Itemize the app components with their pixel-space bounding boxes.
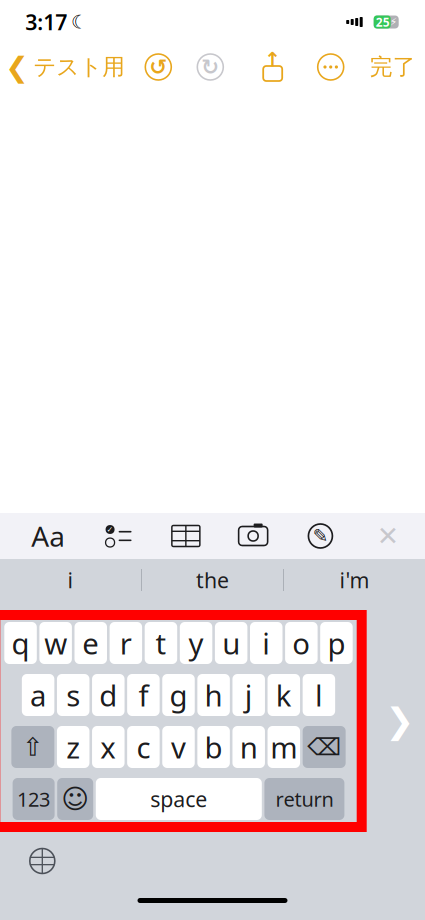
staticText: space: [150, 785, 207, 813]
staticText: s: [66, 675, 80, 714]
staticText: Aa: [31, 517, 65, 555]
staticText: ⇧: [22, 733, 43, 761]
staticText: ☾: [71, 11, 88, 33]
staticText: k: [276, 675, 292, 714]
staticText: 123: [17, 786, 50, 812]
button[interactable]: r: [110, 622, 142, 664]
button[interactable]: y: [180, 622, 212, 664]
button[interactable]: q: [4, 622, 37, 664]
button[interactable]: Checklist: [103, 522, 135, 550]
staticText: 3:17: [25, 8, 67, 36]
button[interactable]: Redo: [195, 52, 225, 82]
staticText: x: [100, 727, 116, 766]
staticText: e: [82, 623, 99, 662]
staticText: y: [189, 623, 204, 662]
button[interactable]: space: [96, 778, 262, 820]
staticText: a: [30, 675, 46, 714]
button[interactable]: b: [197, 726, 230, 768]
staticText: o: [292, 623, 310, 662]
staticText: b: [205, 727, 223, 766]
button[interactable]: Text formatting: [29, 519, 67, 553]
button[interactable]: k: [267, 674, 300, 716]
staticText: u: [222, 623, 240, 662]
staticText: v: [171, 727, 186, 766]
button[interactable]: i'm: [284, 559, 425, 601]
button[interactable]: o: [285, 622, 318, 664]
button[interactable]: i: [250, 622, 282, 664]
button[interactable]: d: [92, 674, 124, 716]
button[interactable]: Emoji: [57, 778, 93, 820]
staticText: ⌫: [307, 733, 341, 761]
button[interactable]: n: [232, 726, 265, 768]
button[interactable]: Share: [258, 52, 288, 82]
button[interactable]: a: [22, 674, 54, 716]
staticText: ☺: [61, 784, 89, 814]
button[interactable]: Close keyboard: [372, 520, 404, 552]
button[interactable]: e: [74, 622, 107, 664]
button[interactable]: the: [142, 559, 283, 601]
button[interactable]: 完了: [370, 47, 425, 87]
button[interactable]: g: [162, 674, 195, 716]
button[interactable]: p: [320, 622, 353, 664]
staticText: i: [262, 623, 270, 662]
button[interactable]: z: [57, 726, 89, 768]
staticText: q: [12, 623, 30, 662]
staticText: the: [196, 566, 229, 594]
button[interactable]: Delete: [303, 726, 346, 768]
button[interactable]: i: [0, 559, 141, 601]
staticText: ❯: [385, 701, 414, 741]
button[interactable]: Camera: [237, 522, 269, 550]
staticText: ↻: [201, 55, 219, 79]
button[interactable]: s: [57, 674, 89, 716]
button[interactable]: j: [232, 674, 265, 716]
button[interactable]: Markup: [304, 522, 336, 550]
button[interactable]: c: [127, 726, 160, 768]
staticText: w: [44, 623, 67, 662]
button[interactable]: v: [162, 726, 195, 768]
staticText: j: [245, 675, 253, 714]
staticText: ❮: [5, 51, 28, 83]
button[interactable]: Shift: [11, 726, 54, 768]
button[interactable]: t: [145, 622, 177, 664]
button[interactable]: Undo: [143, 52, 173, 82]
staticText: r: [120, 623, 132, 662]
button[interactable]: More: [316, 52, 346, 82]
staticText: i'm: [339, 566, 369, 594]
button[interactable]: 123: [13, 778, 55, 820]
staticText: i: [67, 566, 73, 594]
button[interactable]: Next keyboard: [26, 845, 58, 877]
staticText: m: [270, 727, 297, 766]
staticText: ✕: [377, 521, 399, 551]
button[interactable]: w: [39, 622, 72, 664]
staticText: f: [138, 675, 148, 714]
staticText: ⚡︎: [390, 16, 397, 28]
staticText: return: [275, 786, 333, 812]
staticText: ✎: [312, 525, 328, 547]
staticText: n: [240, 727, 258, 766]
staticText: 完了: [370, 53, 416, 81]
staticText: t: [155, 623, 166, 662]
staticText: ✓: [107, 525, 114, 534]
staticText: z: [66, 727, 80, 766]
button[interactable]: return: [264, 778, 344, 820]
button[interactable]: Table: [170, 522, 202, 550]
staticText: c: [136, 727, 150, 766]
button[interactable]: x: [92, 726, 124, 768]
button[interactable]: f: [127, 674, 160, 716]
staticText: テスト用: [33, 53, 125, 81]
button[interactable]: l: [303, 674, 335, 716]
staticText: ↑: [264, 48, 281, 71]
button[interactable]: m: [267, 726, 300, 768]
staticText: 25: [376, 14, 390, 30]
staticText: d: [99, 675, 117, 714]
button[interactable]: h: [197, 674, 230, 716]
staticText: l: [315, 675, 323, 714]
button[interactable]: u: [215, 622, 247, 664]
staticText: ↺: [149, 55, 167, 79]
staticText: h: [205, 675, 223, 714]
staticText: p: [327, 623, 345, 662]
button[interactable]: ❮: [0, 45, 125, 89]
staticText: g: [169, 675, 187, 714]
